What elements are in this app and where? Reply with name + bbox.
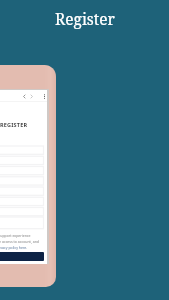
- button[interactable]: Forward: [28, 93, 35, 100]
- button[interactable]: [0, 186, 44, 194]
- button[interactable]: More options: [41, 93, 48, 100]
- staticText: other purposes described in our privacy …: [0, 245, 28, 250]
- button[interactable]: [0, 166, 44, 174]
- button[interactable]: Back: [21, 93, 28, 100]
- button[interactable]: [0, 206, 44, 214]
- button[interactable]: [0, 176, 44, 184]
- staticText: Your personal data will be used to suppo…: [0, 233, 31, 238]
- button[interactable]: Register: [0, 252, 44, 261]
- staticText: Register: [55, 8, 115, 29]
- button[interactable]: [0, 217, 44, 229]
- staticText: REGISTER: [0, 121, 28, 128]
- button[interactable]: [0, 196, 44, 204]
- button[interactable]: [0, 156, 44, 164]
- staticText: throughout this website, to manage acces…: [0, 239, 40, 244]
- button[interactable]: [0, 146, 44, 154]
